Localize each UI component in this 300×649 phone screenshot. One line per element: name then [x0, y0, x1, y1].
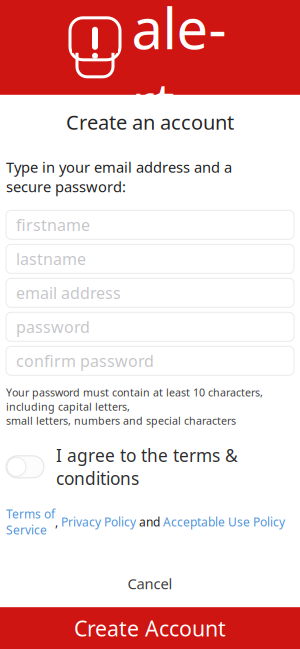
- staticText: I agree to the terms & conditions: [56, 444, 238, 490]
- staticText: Create Account: [74, 614, 226, 642]
- staticText: password: [16, 316, 90, 337]
- staticText: alert: [131, 0, 226, 139]
- staticText: Create an account: [66, 109, 234, 135]
- button[interactable]: I agree to the terms & conditions: [6, 444, 294, 490]
- staticText: firstname: [16, 214, 90, 235]
- staticText: Acceptable Use Policy: [163, 514, 285, 530]
- staticText: Cancel: [127, 574, 172, 593]
- staticText: lastname: [16, 248, 86, 269]
- staticText: Terms of Service: [6, 506, 55, 538]
- staticText: email address: [16, 282, 121, 303]
- staticText: Your password must contain at least 10 c…: [6, 385, 263, 428]
- staticText: ,: [55, 514, 61, 530]
- button[interactable]: Acceptable Use Policy: [163, 514, 285, 530]
- button[interactable]: Privacy Policy: [61, 514, 136, 530]
- staticText: confirm password: [16, 350, 154, 371]
- button[interactable]: Terms of Service: [6, 506, 55, 538]
- staticText: Privacy Policy: [61, 514, 136, 530]
- button[interactable]: Cancel: [6, 568, 294, 599]
- staticText: Type in your email address and a secure …: [6, 157, 232, 196]
- button[interactable]: Create Account: [0, 607, 300, 649]
- staticText: and: [136, 514, 163, 530]
